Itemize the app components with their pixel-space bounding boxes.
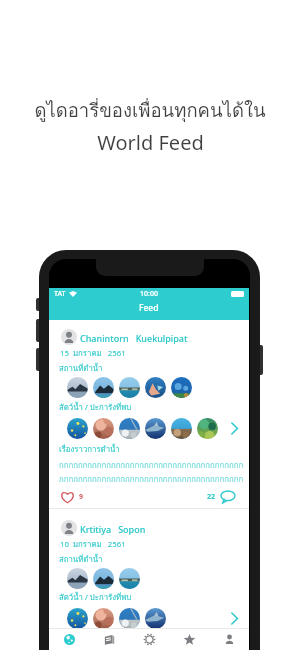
button[interactable]: Photo: [67, 608, 88, 629]
button[interactable]: Photo: [67, 377, 88, 398]
button[interactable]: Photo: [119, 568, 140, 589]
button[interactable]: World feed: [49, 629, 89, 650]
staticText: TAT: [54, 289, 66, 299]
staticText: สัตว์น้ำ / ปะการังที่พบ: [59, 401, 132, 413]
staticText: World Feed: [97, 129, 204, 156]
button[interactable]: Photo: [67, 568, 88, 589]
button[interactable]: Photo: [93, 377, 114, 398]
staticText: สัตว์น้ำ / ปะการังที่พบ: [59, 591, 132, 603]
button[interactable]: See more: [228, 612, 241, 625]
staticText: ดูไดอารี่ของเพื่อนทุกคนได้ใน: [34, 96, 266, 125]
staticText: สถานที่ดำน้ำ: [59, 553, 103, 565]
button[interactable]: Photo: [119, 608, 140, 629]
button[interactable]: Photo: [93, 608, 114, 629]
button[interactable]: 9: [60, 491, 84, 503]
button[interactable]: Favourites: [169, 629, 209, 650]
button[interactable]: Photo: [145, 377, 166, 398]
staticText: 10:00: [140, 289, 158, 299]
button[interactable]: Photo: [171, 418, 192, 439]
button[interactable]: Photo: [145, 418, 166, 439]
staticText: Feed: [139, 302, 159, 314]
button[interactable]: See more: [228, 422, 241, 435]
button[interactable]: Diary: [89, 629, 129, 650]
button[interactable]: Photo: [197, 418, 218, 439]
button[interactable]: Profile: [209, 629, 249, 650]
staticText: 15 มกราคม 2561: [60, 347, 126, 359]
staticText: 10 มกราคม 2561: [60, 538, 126, 550]
button[interactable]: Photo: [171, 377, 192, 398]
button[interactable]: Settings: [129, 629, 169, 650]
button[interactable]: Photo: [119, 418, 140, 439]
button[interactable]: Chanintorn Kuekulpipat: [80, 332, 188, 344]
button[interactable]: Photo: [145, 608, 166, 629]
button[interactable]: Photo: [93, 568, 114, 589]
staticText: เรื่องราวการดำน้ำ: [59, 443, 120, 455]
staticText: 9: [79, 492, 84, 502]
button[interactable]: 22: [207, 491, 235, 503]
staticText: สถานที่ดำน้ำ: [59, 362, 103, 374]
button[interactable]: Photo: [67, 418, 88, 439]
staticText: 22: [207, 492, 216, 502]
button[interactable]: Photo: [119, 377, 140, 398]
staticText: กกกกกกกกกกกกกกกกกกกกกกกกกกกกกกกกกกกกกกก: [59, 473, 244, 485]
staticText: กกกกกกกกกกกกกกกกกกกกกกกกกกกกกกกกกกกกกกก: [59, 459, 244, 471]
button[interactable]: Krtitiya Sopon: [80, 523, 146, 535]
button[interactable]: Photo: [93, 418, 114, 439]
